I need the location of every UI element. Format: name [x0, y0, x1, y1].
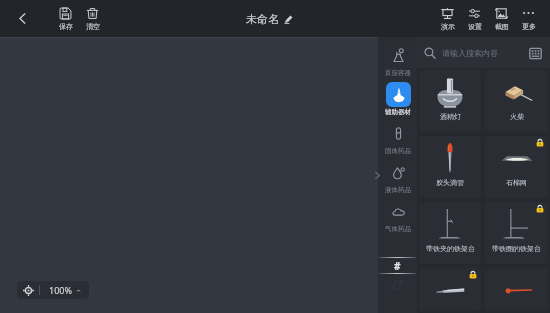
staticText: 火柴 [510, 112, 524, 121]
staticText: 更多 [522, 22, 536, 31]
button[interactable]: 清空 [79, 0, 106, 37]
button[interactable]: 酒精灯 [419, 70, 481, 132]
button[interactable]: 固体药品 [381, 121, 415, 155]
button[interactable]: 截图 [488, 0, 515, 37]
button[interactable]: 液体药品 [381, 160, 415, 194]
button[interactable]: 胶头滴管 [419, 136, 481, 198]
button[interactable]: 火柴 [485, 70, 548, 132]
button[interactable]: 玻璃导管 [419, 268, 481, 311]
staticText: 100% [49, 284, 72, 296]
button[interactable]: 带铁圈的铁架台 [485, 202, 548, 264]
button[interactable]: 更多 [515, 0, 542, 37]
other: Recenter [17, 281, 39, 299]
button[interactable]: Keyboard [528, 46, 542, 60]
staticText: 保存 [59, 22, 73, 31]
button[interactable]: 带铁夹的铁架台 [419, 202, 481, 264]
button[interactable]: 未命名 [246, 12, 293, 26]
staticText: 气体药品 [385, 225, 411, 233]
button[interactable]: 石棉网 [485, 136, 548, 198]
staticText: 石棉网 [506, 178, 527, 187]
button[interactable]: Recenter [17, 281, 89, 299]
staticText: 反应容器 [385, 69, 411, 77]
button[interactable]: 请输入搜索内容 [424, 42, 528, 64]
staticText: 带铁圈的铁架台 [492, 244, 541, 253]
button[interactable]: 辅助器材 [381, 82, 415, 116]
button[interactable]: 设置 [461, 0, 488, 37]
staticText: 未命名 [246, 12, 279, 26]
button[interactable]: 演示 [434, 0, 461, 37]
button[interactable]: 反应容器 [381, 43, 415, 77]
staticText: 液体药品 [385, 186, 411, 194]
staticText: 辅助器材 [385, 108, 411, 116]
staticText: 固体药品 [385, 147, 411, 155]
staticText: 演示 [441, 22, 455, 31]
button[interactable]: 气体药品 [381, 199, 415, 233]
staticText: 设置 [468, 22, 482, 31]
staticText: 胶头滴管 [436, 178, 464, 187]
staticText: 截图 [495, 22, 509, 31]
button[interactable]: 保存 [52, 0, 79, 37]
button[interactable]: # [378, 258, 417, 273]
button[interactable]: Back [0, 0, 52, 37]
staticText: 酒精灯 [440, 112, 461, 121]
staticText: 请输入搜索内容 [442, 48, 498, 58]
button[interactable]: Collapse panel [371, 162, 383, 188]
staticText: 带铁夹的铁架台 [426, 244, 475, 253]
button[interactable]: 导管 [485, 268, 548, 311]
staticText: # [394, 259, 401, 273]
staticText: 清空 [86, 22, 100, 31]
